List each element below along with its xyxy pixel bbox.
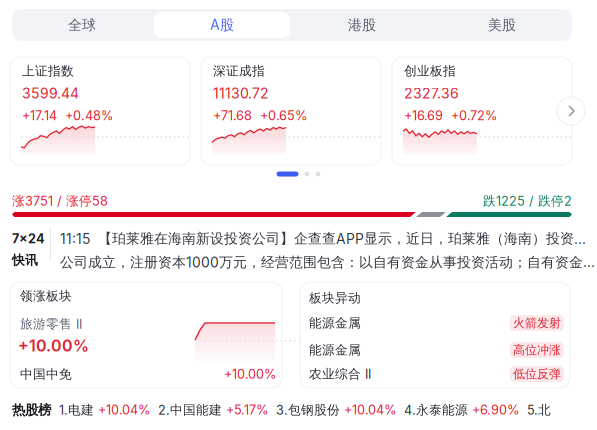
staticText: 旅游零售 II: [20, 316, 82, 332]
staticText: 美股: [488, 16, 516, 34]
staticText: 跌1225 / 跌停2: [483, 193, 572, 209]
staticText: 港股: [348, 16, 376, 34]
button[interactable]: 美股: [432, 9, 572, 41]
staticText: +10.00%: [18, 336, 89, 355]
staticText: +71.68: [213, 108, 252, 123]
staticText: +6.90%: [472, 402, 519, 418]
staticText: 5.北: [519, 402, 551, 418]
button[interactable]: 港股: [292, 9, 432, 41]
staticText: 创业板指: [404, 63, 456, 79]
staticText: 领涨板块: [20, 288, 72, 304]
staticText: 板块异动: [309, 290, 361, 306]
staticText: +0.48%: [65, 108, 113, 123]
button[interactable]: 全球: [12, 9, 152, 41]
staticText: 1.电建: [51, 402, 98, 418]
button[interactable]: 7x24: [0, 222, 597, 274]
staticText: 7x24: [12, 231, 45, 246]
staticText: 3.包钢股份: [268, 402, 344, 418]
staticText: 能源金属: [309, 315, 361, 331]
staticText: 中国中免: [20, 366, 72, 382]
staticText: +0.65%: [260, 108, 307, 123]
button[interactable]: 上证指数: [10, 57, 190, 165]
staticText: 深证成指: [213, 63, 265, 79]
button[interactable]: A股: [152, 9, 292, 41]
staticText: 11:15 【珀莱雅在海南新设投资公司】企查查APP显示，近日，珀莱雅（海南）投…: [60, 230, 597, 247]
staticText: 热股榜: [12, 402, 51, 418]
button[interactable]: 深证成指: [201, 57, 381, 165]
staticText: 能源金属: [309, 342, 361, 358]
staticText: 2327.36: [404, 85, 459, 102]
staticText: 高位冲涨: [513, 342, 561, 357]
staticText: 2.中国能建: [150, 402, 226, 418]
staticText: +0.72%: [451, 108, 497, 123]
staticText: +5.17%: [226, 402, 268, 418]
staticText: 11130.72: [213, 85, 269, 102]
staticText: 上证指数: [22, 63, 74, 79]
button[interactable]: 领涨板块: [10, 282, 282, 388]
staticText: +16.69: [404, 108, 443, 123]
staticText: 农业综合 II: [309, 366, 371, 382]
staticText: 低位反弹: [513, 366, 561, 381]
staticText: 3599.44: [22, 85, 79, 102]
staticText: 涨3751 / 涨停58: [12, 193, 108, 209]
button[interactable]: 创业板指: [392, 57, 572, 165]
staticText: +10.04%: [98, 402, 150, 418]
staticText: +17.14: [22, 108, 57, 123]
staticText: +10.00%: [224, 367, 276, 382]
staticText: 火箭发射: [513, 315, 561, 330]
staticText: 4.永泰能源: [396, 402, 472, 418]
staticText: 快讯: [12, 252, 38, 268]
staticText: A股: [210, 16, 234, 34]
button[interactable]: 下一页: [557, 97, 585, 125]
button[interactable]: 板块异动: [300, 282, 570, 388]
staticText: +10.04%: [344, 402, 396, 418]
staticText: 公司成立，注册资本1000万元，经营范围包含：以自有资金从事投资活动；自有资金投…: [60, 253, 597, 271]
staticText: 全球: [68, 16, 96, 34]
